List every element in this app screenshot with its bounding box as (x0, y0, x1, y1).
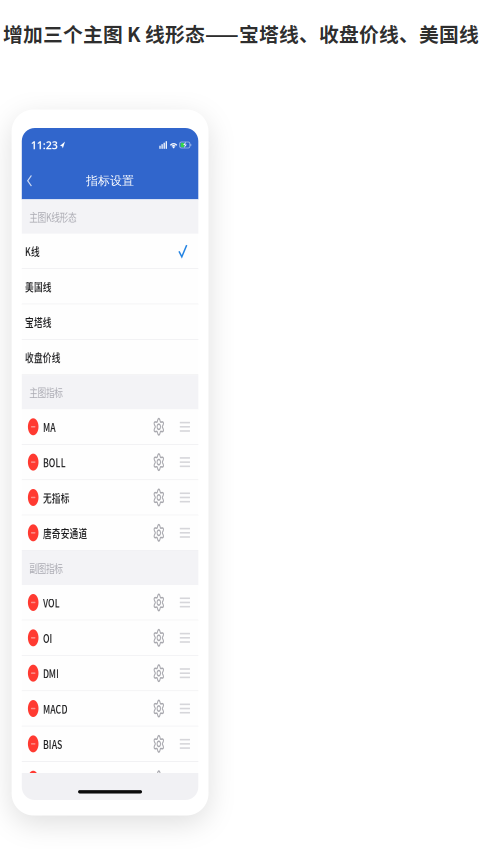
staticText: 副图指标 (29, 560, 73, 576)
button[interactable]: Settings for KDJ (147, 763, 171, 795)
staticText: KDJ (43, 771, 65, 788)
button[interactable]: Back (22, 167, 40, 195)
staticText: RSI (43, 806, 62, 823)
button[interactable]: Remove MA (25, 410, 43, 443)
button[interactable]: Settings for MACD (147, 693, 171, 724)
staticText: K线 (25, 243, 45, 260)
button[interactable]: 宝塔线 (22, 304, 198, 340)
button[interactable]: K线 (22, 234, 198, 269)
button[interactable]: Remove BOLL (25, 446, 43, 479)
button[interactable]: Remove VOL (25, 586, 43, 619)
staticText: 美国线 (25, 278, 61, 295)
staticText: 主图K线形态 (29, 208, 91, 225)
button[interactable]: Remove RSI (25, 798, 43, 831)
staticText: 宝塔线 (25, 313, 61, 330)
button[interactable]: Reorder DMI (171, 660, 195, 686)
button[interactable]: 美国线 (22, 269, 198, 304)
staticText: 主图指标 (29, 384, 73, 401)
button[interactable]: Reorder KDJ (171, 766, 195, 792)
staticText: 增加三个主图 K 线形态——宝塔线、收盘价线、美国线 (3, 19, 479, 48)
button[interactable]: Settings for 唐奇安通道 (147, 517, 171, 549)
button[interactable]: Reorder MACD (171, 695, 195, 722)
button[interactable]: Remove KDJ (25, 763, 43, 796)
button[interactable]: Settings for RSI (147, 799, 171, 830)
button[interactable]: Settings for DMI (147, 657, 171, 689)
staticText: 收盘价线 (25, 349, 73, 366)
button[interactable]: Settings for OI (147, 622, 171, 654)
staticText: 唐奇安通道 (43, 524, 103, 541)
button[interactable]: Reorder 无指标 (171, 484, 195, 511)
button[interactable]: Reorder BIAS (171, 731, 195, 757)
staticText: BIAS (43, 735, 69, 752)
staticText: 指标设置 (86, 173, 134, 188)
button[interactable]: Reorder BOLL (171, 449, 195, 475)
staticText: DMI (43, 665, 65, 682)
staticText: 11:23 (31, 138, 58, 152)
button[interactable]: Settings for BIAS (147, 728, 171, 760)
staticText: BOLL (43, 454, 74, 471)
button[interactable]: Remove OI (25, 621, 43, 654)
button[interactable]: Reorder MA (171, 414, 195, 440)
button[interactable]: Remove DMI (25, 657, 43, 690)
staticText: MACD (43, 700, 76, 717)
button[interactable]: Reorder VOL (171, 589, 195, 616)
staticText: OI (43, 629, 56, 646)
button[interactable]: 收盘价线 (22, 340, 198, 375)
button[interactable]: Remove MACD (25, 692, 43, 725)
button[interactable]: Remove 唐奇安通道 (25, 516, 43, 549)
staticText: MA (43, 418, 60, 435)
button[interactable]: Settings for VOL (147, 587, 171, 618)
staticText: 无指标 (43, 489, 79, 506)
button[interactable]: Reorder 唐奇安通道 (171, 520, 195, 546)
button[interactable]: Remove BIAS (25, 727, 43, 760)
staticText: VOL (43, 594, 66, 611)
button[interactable]: Settings for BOLL (147, 446, 171, 478)
button[interactable]: Reorder RSI (171, 801, 195, 828)
button[interactable]: Settings for 无指标 (147, 482, 171, 513)
button[interactable]: Reorder OI (171, 625, 195, 651)
button[interactable]: Remove 无指标 (25, 481, 43, 514)
button[interactable]: Settings for MA (147, 411, 171, 443)
